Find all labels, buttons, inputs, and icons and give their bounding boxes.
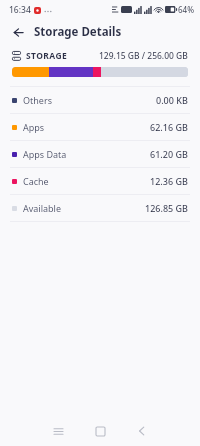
button[interactable]: Recent apps [43,416,73,446]
button[interactable]: Apps [0,114,200,140]
staticText: 62.16 GB [150,121,188,133]
staticText: 12.36 GB [150,175,188,187]
staticText: STORAGE [26,50,68,62]
button[interactable]: Home [85,416,115,446]
staticText: 16:34 [9,4,31,16]
staticText: Apps [23,121,45,133]
staticText: Available [23,202,61,214]
staticText: 129.15 GB / 256.00 GB [99,50,188,62]
staticText: Cache [23,175,49,187]
button[interactable]: Available [0,195,200,221]
button[interactable]: Apps Data [0,141,200,167]
button[interactable]: Others [0,87,200,113]
staticText: Apps Data [23,148,67,160]
button[interactable]: Back [127,416,157,446]
staticText: Storage Details [34,24,122,40]
button[interactable]: Cache [0,168,200,194]
button[interactable]: Back [8,22,28,42]
staticText: 64% [178,4,194,15]
staticText: 0.00 KB [156,94,188,106]
staticText: Others [23,94,52,106]
staticText: 126.85 GB [145,202,188,214]
staticText: 61.20 GB [150,148,188,160]
